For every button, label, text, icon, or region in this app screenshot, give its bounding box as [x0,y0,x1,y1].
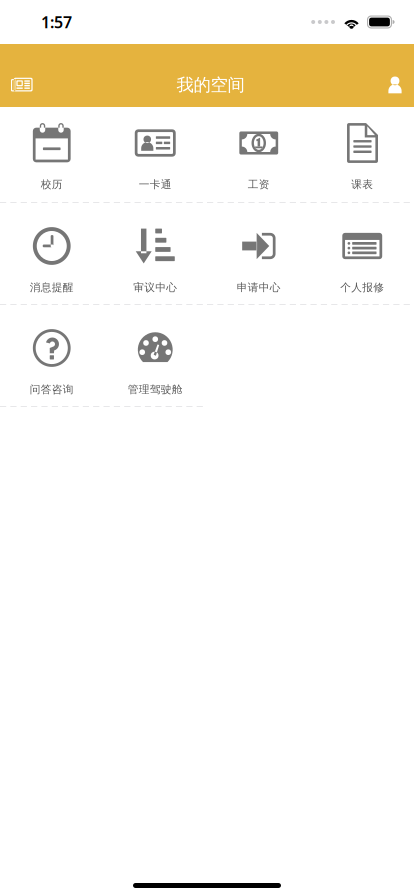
button[interactable]: 校历 [0,107,103,203]
button[interactable]: 个人报修 [310,203,414,305]
staticText: 管理驾驶舱 [128,383,183,396]
staticText: 课表 [351,178,373,191]
staticText: 问答咨询 [30,383,74,396]
button[interactable]: 消息提醒 [0,203,103,305]
button[interactable]: 一卡通 [103,107,207,203]
button[interactable]: 管理驾驶舱 [103,305,207,407]
staticText: 一卡通 [139,178,172,191]
button[interactable]: 问答咨询 [0,305,103,407]
button[interactable]: Profile [374,63,414,107]
staticText: 审议中心 [133,281,177,294]
staticText: 消息提醒 [30,281,74,294]
button[interactable]: 申请中心 [207,203,310,305]
button[interactable]: 课表 [310,107,414,203]
button[interactable]: News [0,63,47,107]
staticText: 1:57 [41,11,72,33]
staticText: 工资 [248,178,270,191]
staticText: 校历 [41,178,63,191]
button[interactable]: 工资 [207,107,310,203]
staticText: 我的空间 [176,74,244,96]
staticText: 个人报修 [340,281,384,294]
staticText: 申请中心 [237,281,281,294]
button[interactable]: 审议中心 [103,203,207,305]
